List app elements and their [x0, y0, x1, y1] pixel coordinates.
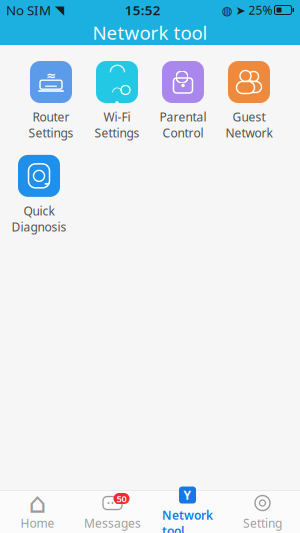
staticText: Network tool: [92, 20, 207, 45]
staticText: Y: [183, 487, 191, 503]
staticText: ⌂: [28, 487, 46, 519]
staticText: ◠: [112, 84, 122, 99]
button[interactable]: ◠: [84, 61, 150, 141]
staticText: ≈: [46, 69, 56, 82]
staticText: Network: [225, 125, 272, 141]
button[interactable]: Setting: [225, 491, 300, 533]
staticText: Parental: [159, 109, 206, 125]
staticText: ◠: [109, 59, 124, 82]
staticText: 50: [116, 492, 126, 505]
staticText: Messages: [84, 515, 141, 531]
staticText: Network tool: [162, 507, 213, 533]
staticText: Guest: [232, 109, 265, 125]
staticText: No SIM: [6, 1, 51, 19]
staticText: 15:52: [125, 1, 161, 19]
staticText: ◍ ➤ 25%: [221, 2, 272, 18]
staticText: Settings: [94, 125, 139, 141]
button[interactable]: Guest: [216, 61, 282, 141]
staticText: Control: [162, 125, 203, 141]
staticText: ◥: [51, 3, 64, 17]
button[interactable]: Quick: [6, 155, 72, 235]
button[interactable]: ⌂: [0, 491, 75, 533]
button[interactable]: ≈: [18, 61, 84, 141]
staticText: Settings: [28, 125, 73, 141]
staticText: Home: [20, 515, 54, 531]
button[interactable]: 50: [75, 491, 150, 533]
button[interactable]: Parental: [150, 61, 216, 141]
staticText: Quick: [23, 203, 54, 219]
staticText: Diagnosis: [11, 219, 66, 235]
staticText: Wi-Fi: [103, 109, 130, 125]
button[interactable]: Y: [150, 491, 225, 533]
staticText: Router: [32, 109, 69, 125]
staticText: Setting: [243, 515, 282, 531]
